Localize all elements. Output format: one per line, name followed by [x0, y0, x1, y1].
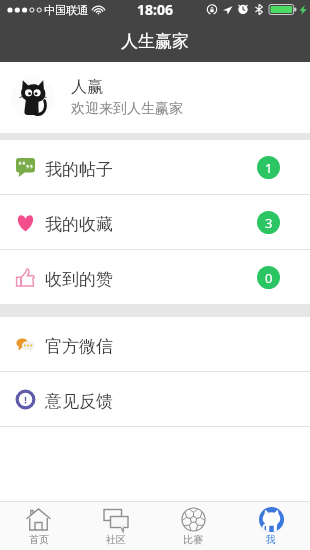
- button[interactable]: 我的帖子: [0, 140, 310, 194]
- staticText: 比赛: [183, 533, 203, 546]
- button[interactable]: 我: [232, 502, 310, 550]
- button[interactable]: 官方微信: [0, 317, 310, 371]
- staticText: 收到的赞: [45, 269, 113, 290]
- button[interactable]: 意见反馈: [0, 372, 310, 426]
- button[interactable]: 收到的赞: [0, 250, 310, 304]
- button[interactable]: 比赛: [154, 502, 232, 550]
- staticText: 社区: [106, 533, 126, 546]
- button[interactable]: 人赢: [0, 62, 310, 133]
- staticText: 我: [266, 533, 276, 546]
- staticText: 意见反馈: [45, 391, 113, 412]
- staticText: 人赢: [71, 77, 103, 97]
- staticText: 官方微信: [45, 336, 113, 357]
- staticText: 首页: [29, 533, 49, 546]
- staticText: 欢迎来到人生赢家: [71, 100, 183, 118]
- staticText: 我的帖子: [45, 159, 113, 180]
- button[interactable]: 我的收藏: [0, 195, 310, 249]
- staticText: 我的收藏: [45, 214, 113, 235]
- button[interactable]: 首页: [0, 502, 77, 550]
- button[interactable]: 社区: [77, 502, 154, 550]
- staticText: 中国联通: [44, 3, 88, 17]
- staticText: 1: [265, 159, 273, 177]
- staticText: 18:06: [137, 0, 173, 19]
- staticText: 0: [265, 269, 273, 287]
- staticText: 3: [265, 214, 273, 232]
- staticText: 人生赢家: [121, 31, 189, 52]
